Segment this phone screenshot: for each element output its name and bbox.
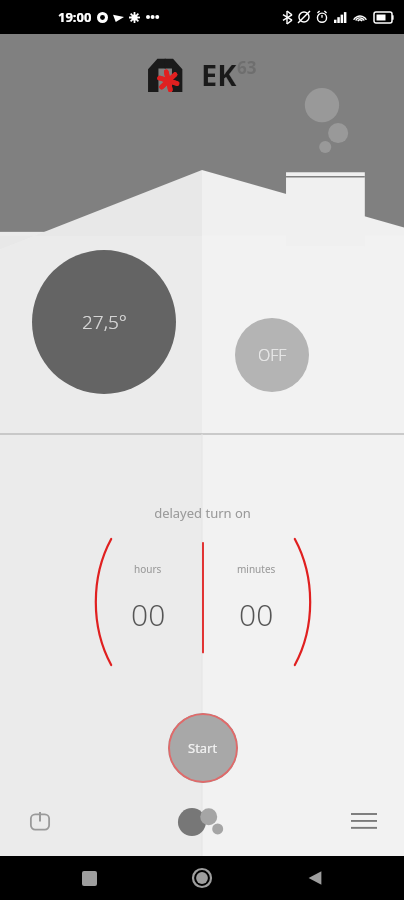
staticText: 27,5° (82, 309, 127, 335)
button[interactable]: OFF (235, 318, 309, 392)
staticText: OFF (258, 344, 287, 366)
button[interactable]: Menu (342, 799, 386, 843)
button[interactable]: Back (291, 856, 339, 900)
staticText: Start (188, 739, 218, 757)
button[interactable]: minutes (216, 562, 296, 635)
staticText: 19:00 (58, 8, 92, 26)
button[interactable]: Power (18, 799, 62, 843)
staticText: minutes (237, 562, 276, 576)
button[interactable]: Home (178, 856, 226, 900)
staticText: EK (201, 55, 237, 94)
button[interactable]: Recents (65, 856, 113, 900)
staticText: 63 (237, 56, 257, 79)
staticText: 00 (239, 594, 274, 635)
button[interactable]: 27,5° (32, 250, 176, 394)
button[interactable]: hours (108, 562, 188, 635)
button[interactable]: Devices (167, 799, 237, 843)
staticText: delayed turn on (154, 504, 251, 522)
button[interactable]: Start (168, 713, 238, 783)
staticText: 00 (131, 594, 166, 635)
staticText: hours (134, 562, 162, 576)
